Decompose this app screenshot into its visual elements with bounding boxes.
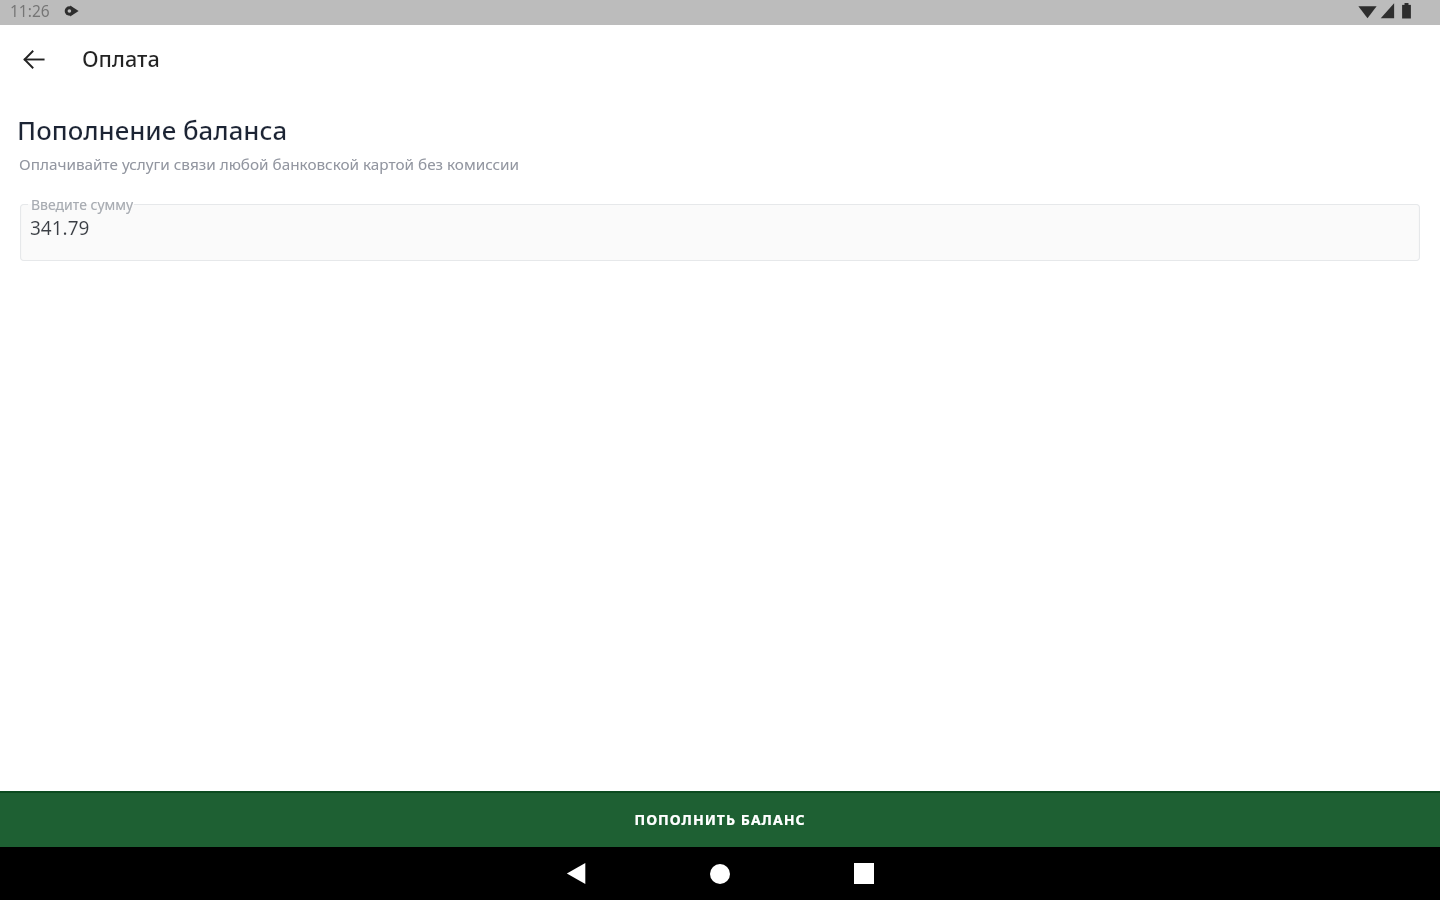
button[interactable]: Введите сумму	[20, 204, 1420, 261]
staticText: 11:26	[10, 0, 50, 21]
staticText: Пополнение баланса	[17, 112, 288, 147]
button[interactable]: Home	[648, 847, 792, 900]
staticText: 341.79	[30, 215, 90, 241]
button[interactable]: Back	[504, 847, 648, 900]
button[interactable]: ПОПОЛНИТЬ БАЛАНС	[0, 791, 1440, 847]
staticText: Оплачивайте услуги связи любой банковско…	[19, 154, 520, 175]
staticText: Введите сумму	[31, 195, 134, 214]
button[interactable]: Recent apps	[792, 847, 936, 900]
button[interactable]: Back	[2, 27, 66, 91]
staticText: ПОПОЛНИТЬ БАЛАНС	[634, 810, 806, 829]
staticText: Оплата	[82, 44, 160, 74]
